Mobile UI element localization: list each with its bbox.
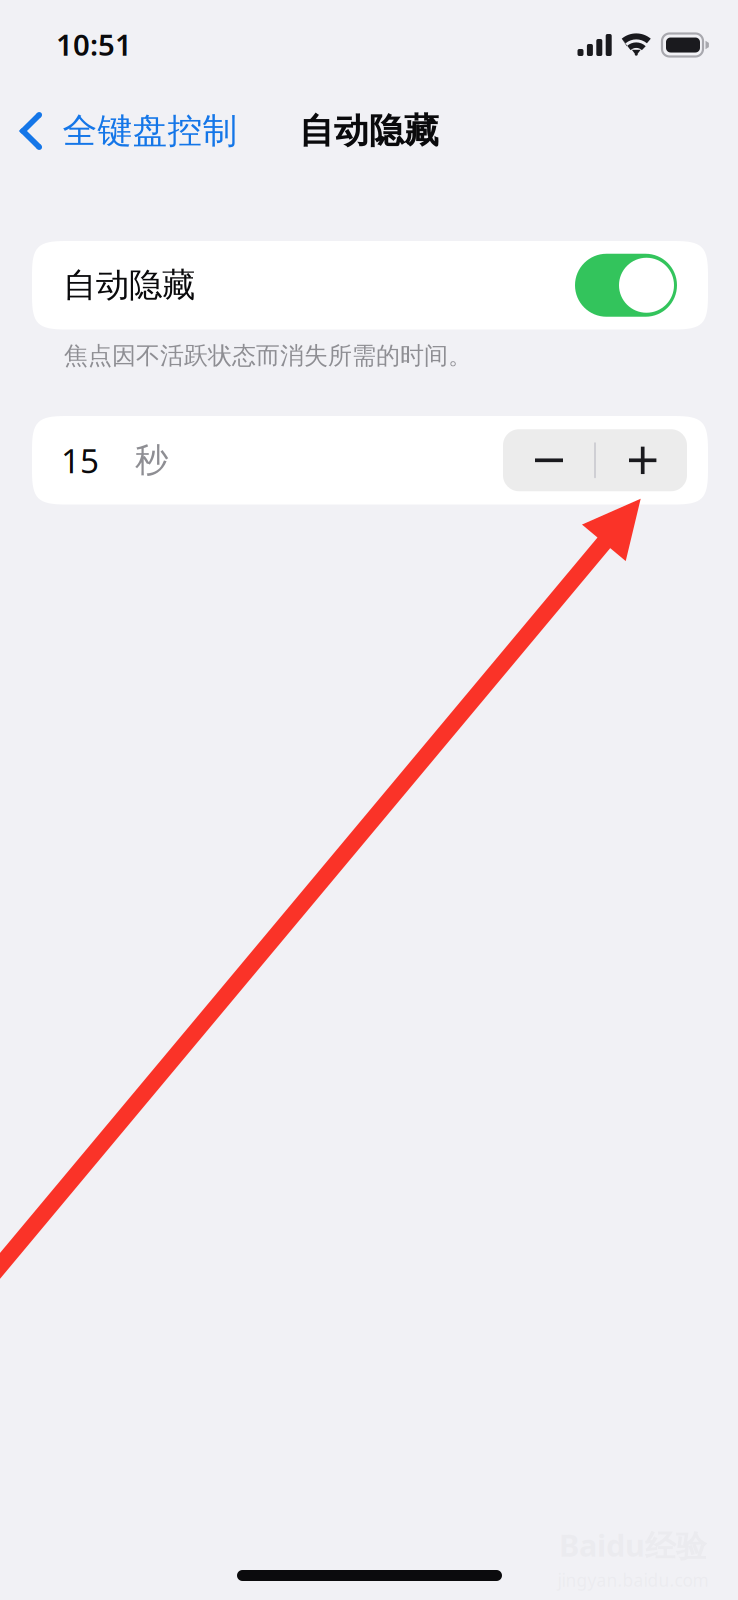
staticText: 15 bbox=[61, 438, 99, 482]
staticText: 10:51 bbox=[56, 25, 132, 64]
staticText: 秒 bbox=[135, 440, 168, 481]
staticText: 全键盘控制 bbox=[62, 110, 237, 152]
staticText: 自动隐藏 bbox=[63, 265, 195, 306]
staticText: 焦点因不活跃状态而消失所需的时间。 bbox=[64, 341, 472, 370]
button[interactable]: 自动隐藏开关 bbox=[575, 254, 677, 317]
button[interactable]: 增加 bbox=[595, 429, 687, 491]
button[interactable]: 返回 全键盘控制 bbox=[0, 98, 260, 164]
button[interactable]: 减少 bbox=[503, 429, 595, 491]
staticText: 自动隐藏 bbox=[299, 110, 439, 152]
